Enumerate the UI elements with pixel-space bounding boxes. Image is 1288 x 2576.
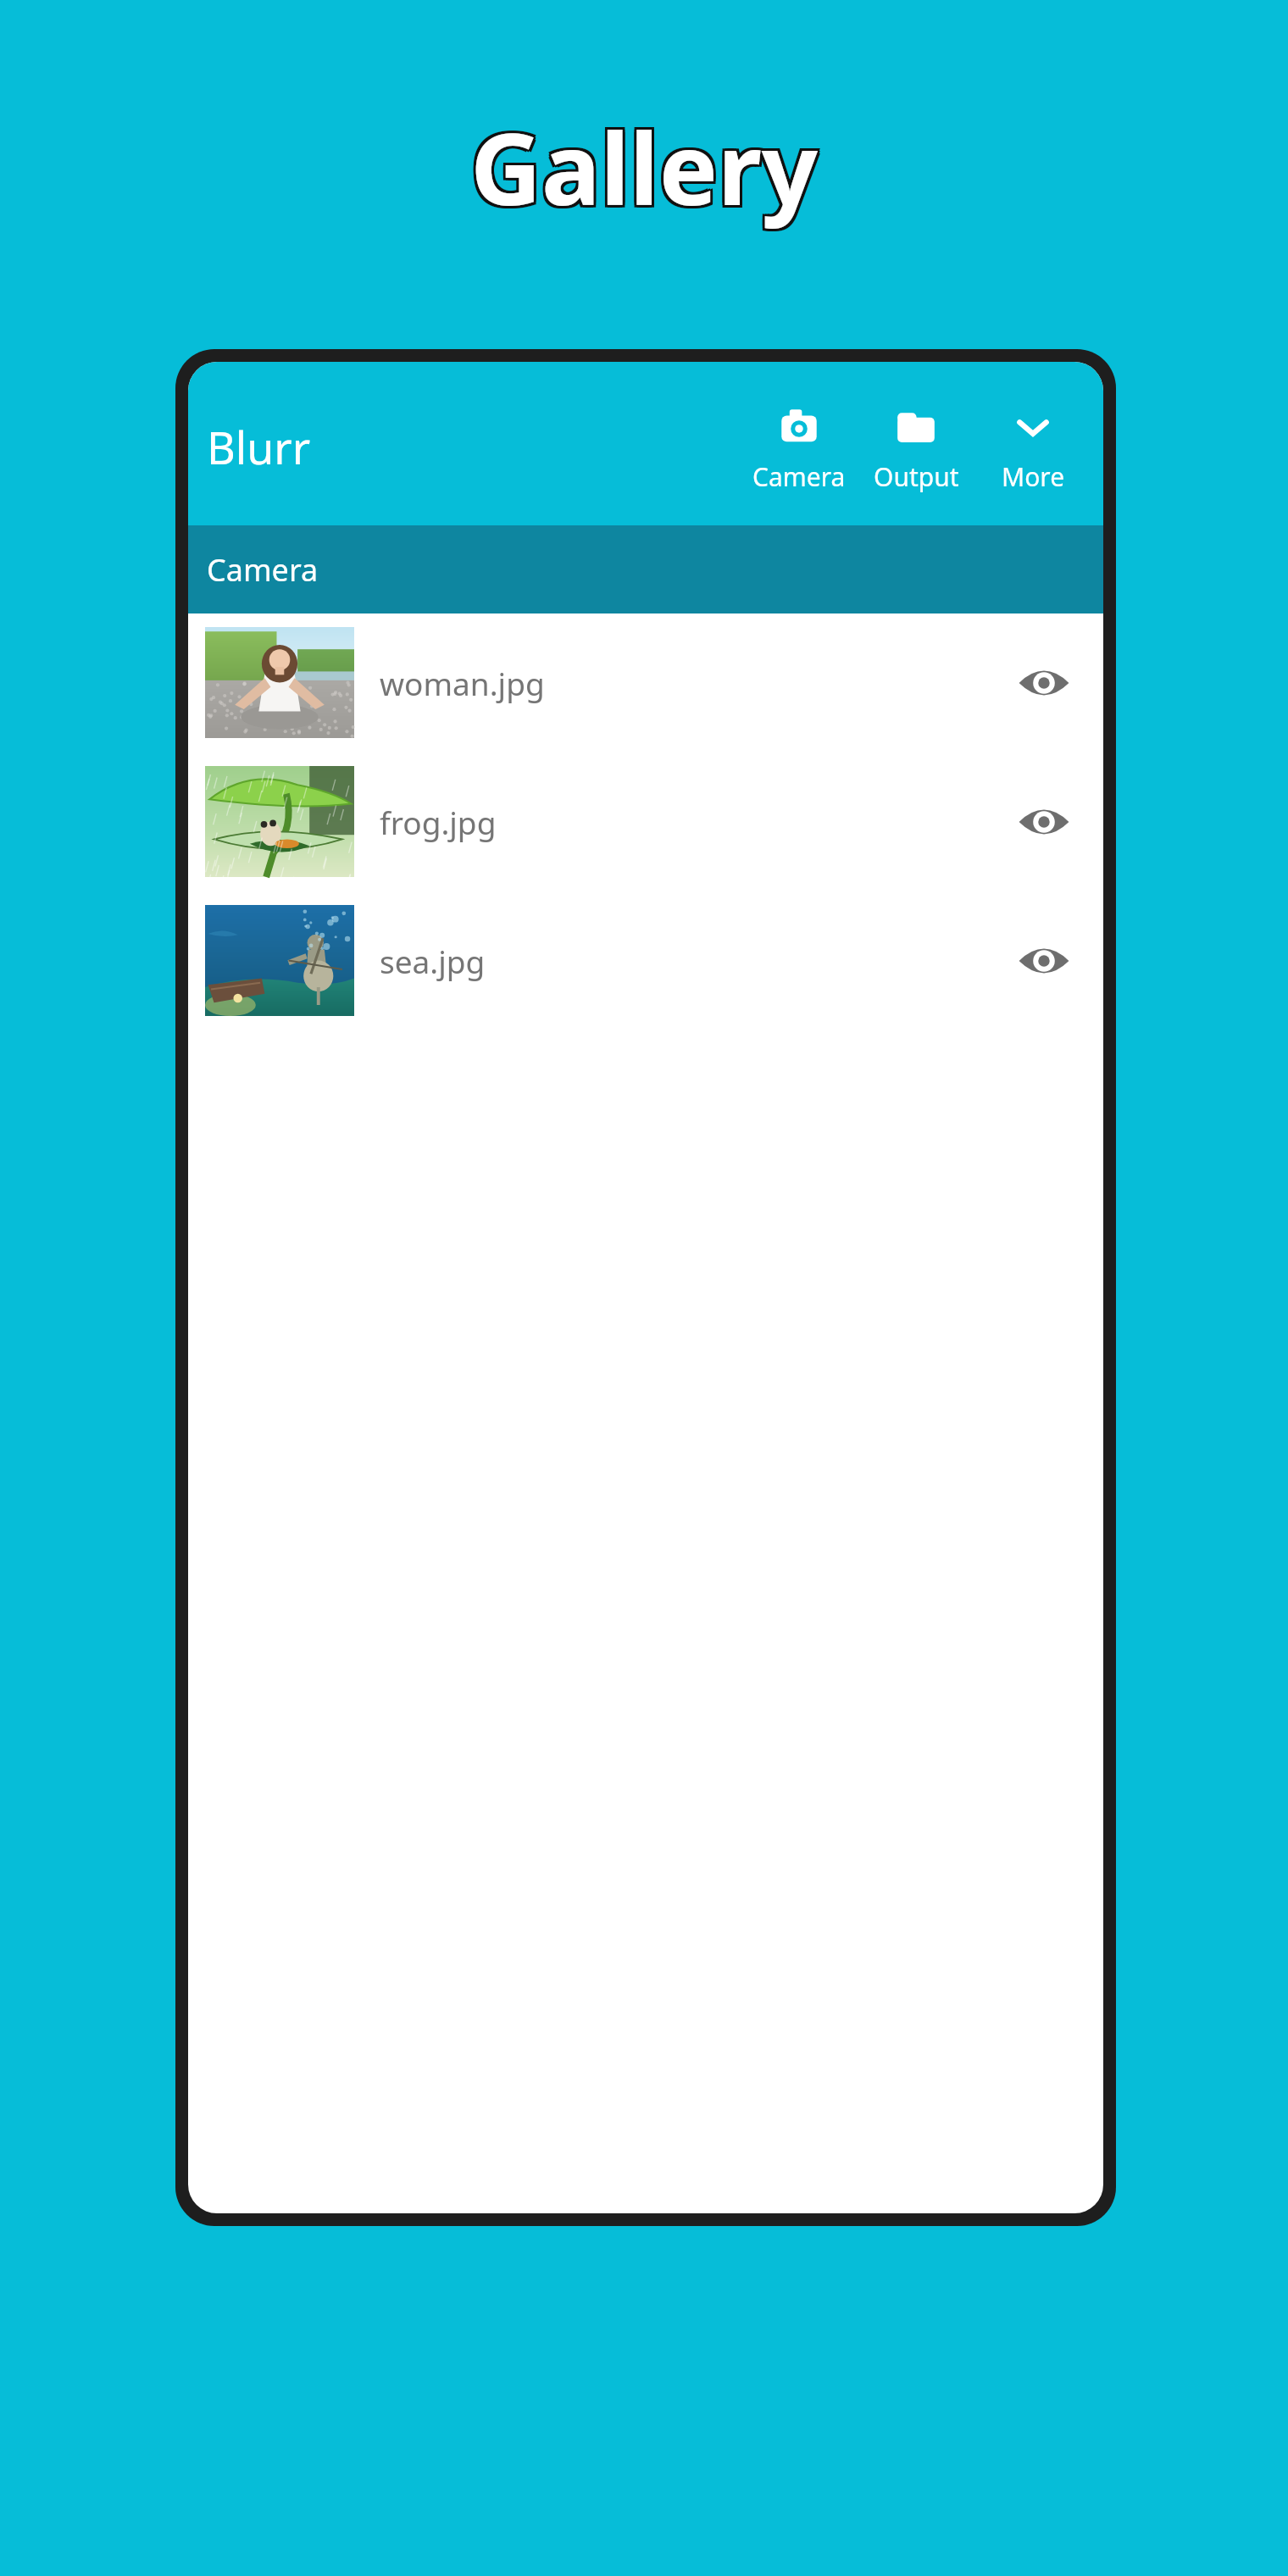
- other: Preview image: [1017, 934, 1071, 988]
- staticText: frog.jpg: [380, 801, 1003, 843]
- button[interactable]: Preview image: [1003, 781, 1085, 863]
- button[interactable]: woman.jpg: [188, 627, 1103, 738]
- staticText: Gallery: [470, 103, 818, 236]
- other: More: [1009, 403, 1057, 451]
- button[interactable]: Preview image: [1003, 642, 1085, 724]
- button[interactable]: sea.jpg: [188, 905, 1103, 1016]
- other: Output folder: [892, 403, 940, 451]
- button[interactable]: Preview image: [1003, 920, 1085, 1002]
- staticText: Gallery: [470, 100, 818, 234]
- staticText: Camera: [207, 549, 319, 591]
- button[interactable]: Camera: [188, 525, 1103, 613]
- staticText: Gallery: [468, 97, 815, 231]
- button[interactable]: Output folder: [861, 398, 971, 499]
- staticText: Gallery: [468, 103, 815, 236]
- staticText: Gallery: [473, 100, 820, 234]
- button[interactable]: frog.jpg: [188, 766, 1103, 877]
- button[interactable]: Camera: [744, 398, 854, 499]
- other: Preview image: [1017, 656, 1071, 710]
- other: Camera: [775, 403, 823, 451]
- staticText: Gallery: [473, 97, 820, 231]
- staticText: Output: [874, 459, 959, 494]
- staticText: Gallery: [470, 97, 818, 231]
- staticText: Gallery: [468, 100, 815, 234]
- other: Preview image: [1017, 795, 1071, 849]
- staticText: woman.jpg: [380, 662, 1003, 704]
- staticText: Gallery: [473, 103, 820, 236]
- staticText: Blurr: [207, 417, 311, 477]
- button[interactable]: More: [978, 398, 1088, 499]
- staticText: sea.jpg: [380, 940, 1003, 982]
- staticText: Camera: [752, 459, 846, 494]
- staticText: More: [1002, 459, 1065, 494]
